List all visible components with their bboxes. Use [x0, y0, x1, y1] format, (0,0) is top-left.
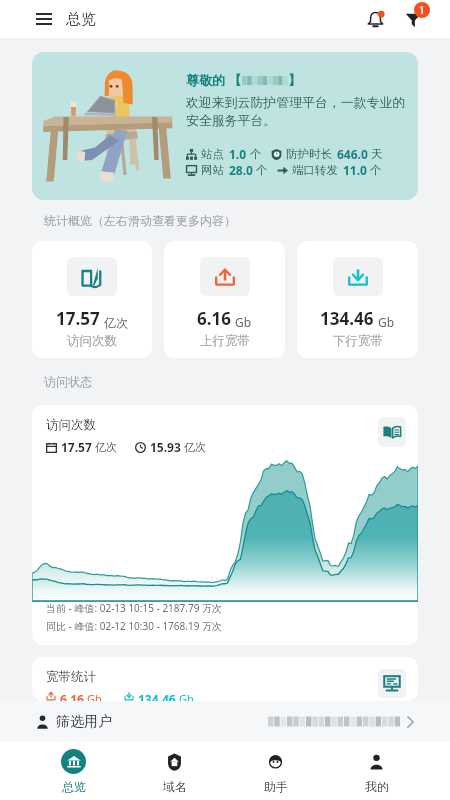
staticText: 总览: [62, 779, 86, 794]
staticText: 防护时长: [286, 147, 332, 161]
staticText: 天: [371, 147, 383, 161]
staticText: 17.57: [56, 307, 100, 330]
button[interactable]: 尊敬的 【: [32, 52, 418, 200]
staticText: 站点: [201, 147, 224, 161]
staticText: 我的: [365, 779, 389, 794]
staticText: 1.0: [229, 146, 247, 162]
staticText: 个: [370, 163, 382, 177]
staticText: 17.57: [61, 439, 92, 455]
staticText: 亿次: [104, 315, 128, 330]
staticText: 域名: [163, 779, 187, 794]
button[interactable]: 筛选用户: [0, 701, 450, 742]
staticText: 助手: [264, 779, 288, 794]
staticText: 11.0: [343, 162, 367, 178]
staticText: 134.46: [320, 307, 374, 330]
staticText: 端口转发: [292, 163, 338, 177]
button[interactable]: Notifications: [362, 6, 388, 32]
staticText: 个: [256, 163, 268, 177]
button[interactable]: Filter: [400, 6, 426, 32]
button[interactable]: 134.46: [297, 241, 418, 358]
staticText: 28.0: [229, 162, 253, 178]
staticText: 下行宽带: [333, 333, 383, 349]
button[interactable]: 17.57: [32, 241, 152, 358]
button[interactable]: 我的: [326, 742, 427, 800]
staticText: 欢迎来到云防护管理平台，一款专业的安全服务平台。: [186, 95, 410, 129]
staticText: 尊敬的 【: [186, 71, 242, 89]
staticText: 筛选用户: [56, 713, 112, 731]
staticText: 】: [288, 72, 301, 88]
staticText: 当前 - 峰值: 02-13 10:15 - 2187.79 万次: [46, 601, 222, 615]
staticText: Gb: [87, 691, 102, 701]
staticText: Gb: [235, 314, 252, 330]
staticText: 个: [250, 147, 262, 161]
staticText: 亿次: [95, 440, 117, 454]
staticText: 统计概览（左右滑动查看更多内容）: [44, 213, 236, 228]
staticText: 6.16: [60, 691, 84, 701]
staticText: 总览: [66, 10, 96, 29]
staticText: 6.16: [197, 307, 231, 330]
staticText: 访问状态: [44, 374, 92, 389]
staticText: 宽带统计: [46, 669, 96, 685]
button[interactable]: Menu: [32, 7, 56, 31]
staticText: 同比 - 峰值: 02-12 10:30 - 1768.19 万次: [46, 619, 222, 633]
staticText: 上行宽带: [200, 333, 250, 349]
button[interactable]: 助手: [225, 742, 326, 800]
staticText: 访问次数: [67, 333, 117, 349]
staticText: 1: [419, 3, 425, 17]
button[interactable]: 域名: [124, 742, 225, 800]
staticText: Gb: [179, 691, 194, 701]
staticText: 网站: [201, 163, 224, 177]
button[interactable]: 总览: [23, 742, 124, 800]
button[interactable]: 宽带统计: [32, 657, 418, 701]
staticText: 15.93: [150, 439, 181, 455]
staticText: Gb: [378, 314, 395, 330]
staticText: 134.46: [138, 691, 176, 701]
staticText: 646.0: [337, 146, 368, 162]
staticText: 访问次数: [46, 417, 96, 433]
staticText: 亿次: [184, 440, 206, 454]
button[interactable]: 6.16: [164, 241, 285, 358]
